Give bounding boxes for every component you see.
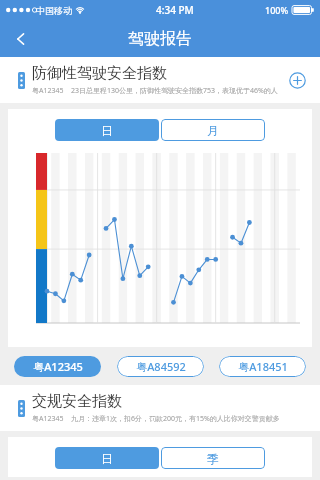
button[interactable]: Add <box>284 67 310 93</box>
button[interactable]: 月 <box>161 119 265 141</box>
button[interactable]: 日 <box>55 447 159 469</box>
staticText: 月 <box>207 123 219 138</box>
button[interactable]: 日 <box>55 119 159 141</box>
button[interactable]: 粤A18451 <box>219 356 306 377</box>
staticText: 交规安全指数 <box>32 392 122 411</box>
staticText: 粤A18451 <box>238 359 288 374</box>
staticText: 粤A12345 <box>32 414 64 424</box>
button[interactable]: Back <box>4 22 38 56</box>
staticText: 粤A12345 <box>33 359 83 374</box>
staticText: 4:34 PM <box>156 3 194 17</box>
staticText: 日 <box>101 123 113 138</box>
staticText: 粤A84592 <box>136 359 186 374</box>
button[interactable]: 粤A84592 <box>117 356 204 377</box>
staticText: 中国移动 <box>36 5 72 16</box>
staticText: 粤A12345 <box>32 86 64 96</box>
staticText: 九月：违章1次，扣6分，罚款200元，有15%的人比你对交警贡献多 <box>71 414 280 424</box>
staticText: 23日总里程130公里，防御性驾驶安全指数753，表现优于46%的人 <box>71 86 278 96</box>
button[interactable]: 季 <box>161 447 265 469</box>
button[interactable]: 粤A12345 <box>14 356 101 377</box>
staticText: 100% <box>265 4 289 16</box>
staticText: 驾驶报告 <box>128 29 192 49</box>
staticText: 防御性驾驶安全指数 <box>32 64 167 83</box>
staticText: 季 <box>207 451 219 466</box>
staticText: 日 <box>101 451 113 466</box>
